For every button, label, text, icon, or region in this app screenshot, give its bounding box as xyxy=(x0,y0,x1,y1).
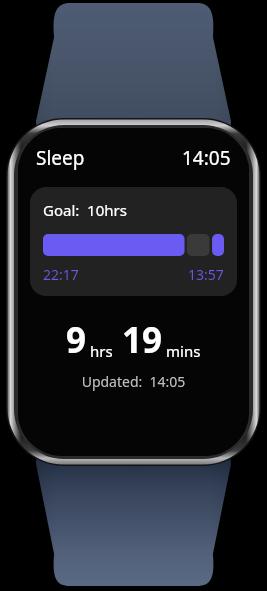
staticText: mins xyxy=(166,341,201,361)
staticText: 19 xyxy=(122,316,163,364)
staticText: 9 xyxy=(66,316,87,364)
button[interactable]: Sleep goal 10 hours xyxy=(30,187,237,296)
staticText: Updated: 14:05 xyxy=(18,372,249,391)
staticText: Sleep xyxy=(36,145,85,171)
staticText: hrs xyxy=(90,341,113,361)
staticText: 22:17 xyxy=(43,265,79,284)
staticText: 14:05 xyxy=(182,145,231,171)
staticText: Goal: 10hrs xyxy=(43,200,127,220)
staticText: 13:57 xyxy=(188,265,224,284)
